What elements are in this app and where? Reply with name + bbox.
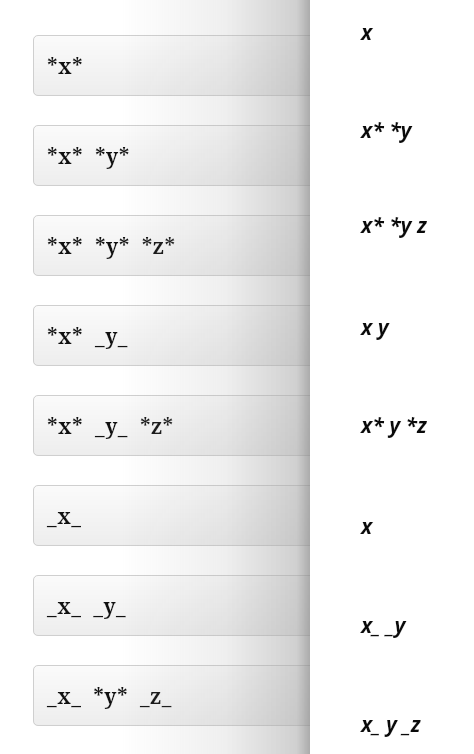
staticText: x* *y	[361, 116, 412, 145]
staticText: x	[361, 512, 373, 541]
staticText: x_ y _z	[361, 710, 421, 739]
button[interactable]: _x_	[33, 485, 310, 546]
button[interactable]: _x_ _y_	[33, 575, 310, 636]
staticText: *x* _y_	[47, 322, 129, 351]
button[interactable]: *x* *y* *z*	[33, 215, 310, 276]
staticText: x* y *z	[361, 411, 427, 440]
button[interactable]: *x*	[33, 35, 310, 96]
button[interactable]: *x* _y_ *z*	[33, 395, 310, 456]
staticText: x y	[361, 313, 389, 342]
button[interactable]: *x* *y*	[33, 125, 310, 186]
staticText: *x* *y*	[47, 142, 130, 171]
staticText: *x* *y* *z*	[47, 232, 176, 261]
staticText: _x_ _y_	[47, 592, 127, 621]
staticText: x	[361, 18, 373, 47]
staticText: *x*	[47, 52, 84, 81]
button[interactable]: *x* _y_	[33, 305, 310, 366]
staticText: _x_	[47, 502, 82, 531]
staticText: _x_ *y* _z_	[47, 682, 172, 711]
staticText: *x* _y_ *z*	[47, 412, 174, 441]
staticText: x_ _y	[361, 611, 406, 640]
staticText: x* *y z	[361, 211, 427, 240]
button[interactable]: _x_ *y* _z_	[33, 665, 310, 726]
